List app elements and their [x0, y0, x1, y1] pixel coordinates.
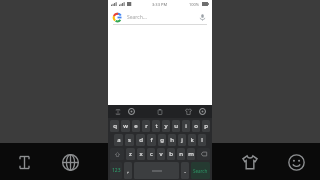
- button[interactable]: Clipboard: [154, 106, 165, 117]
- button[interactable]: d: [136, 134, 145, 146]
- button[interactable]: e: [132, 120, 140, 132]
- button[interactable]: m: [187, 148, 195, 160]
- button[interactable]: q: [110, 120, 119, 132]
- staticText: e: [134, 122, 138, 130]
- staticText: Search: [193, 168, 208, 174]
- staticText: v: [159, 150, 163, 158]
- button[interactable]: j: [178, 134, 186, 146]
- staticText: r: [145, 122, 148, 130]
- staticText: j: [181, 136, 183, 144]
- button[interactable]: Space: [134, 162, 179, 179]
- button[interactable]: b: [167, 148, 175, 160]
- staticText: s: [128, 136, 131, 144]
- staticText: ,: [127, 167, 129, 175]
- staticText: 3:33 PM: [152, 2, 168, 7]
- button[interactable]: a: [114, 134, 123, 146]
- staticText: q: [113, 122, 117, 130]
- button[interactable]: w: [121, 120, 130, 132]
- staticText: z: [129, 150, 132, 158]
- staticText: f: [150, 136, 153, 144]
- button[interactable]: r: [142, 120, 150, 132]
- button[interactable]: More: [197, 106, 208, 117]
- button[interactable]: s: [125, 134, 134, 146]
- staticText: a: [117, 136, 121, 144]
- staticText: .: [184, 167, 186, 175]
- staticText: g: [160, 136, 164, 144]
- staticText: 100%: [189, 2, 200, 7]
- button[interactable]: Globe: [54, 146, 86, 178]
- staticText: k: [190, 136, 194, 144]
- button[interactable]: ,: [124, 162, 132, 179]
- button[interactable]: Search...: [108, 8, 212, 25]
- staticText: p: [204, 122, 208, 130]
- button[interactable]: z: [126, 148, 135, 160]
- button[interactable]: 123: [110, 162, 122, 179]
- button[interactable]: Search: [191, 162, 210, 179]
- staticText: t: [155, 122, 158, 130]
- staticText: l: [201, 136, 203, 144]
- staticText: Search...: [127, 14, 147, 21]
- staticText: h: [170, 136, 174, 144]
- staticText: b: [169, 150, 173, 158]
- button[interactable]: i: [182, 120, 190, 132]
- staticText: o: [194, 122, 198, 130]
- staticText: m: [188, 150, 194, 158]
- button[interactable]: c: [147, 148, 155, 160]
- staticText: 123: [112, 167, 121, 174]
- button[interactable]: t: [152, 120, 160, 132]
- button[interactable]: k: [188, 134, 196, 146]
- staticText: c: [150, 150, 153, 158]
- button[interactable]: Themes: [183, 106, 194, 117]
- button[interactable]: Shift: [110, 148, 124, 160]
- staticText: d: [139, 136, 143, 144]
- button[interactable]: h: [168, 134, 176, 146]
- button[interactable]: o: [192, 120, 200, 132]
- button[interactable]: y: [162, 120, 170, 132]
- button[interactable]: Shirt: [234, 146, 266, 178]
- button[interactable]: l: [198, 134, 206, 146]
- button[interactable]: p: [202, 120, 210, 132]
- button[interactable]: Text tool: [8, 146, 40, 178]
- button[interactable]: Backspace: [197, 148, 210, 160]
- staticText: i: [185, 122, 187, 130]
- button[interactable]: n: [177, 148, 185, 160]
- button[interactable]: Emoji: [280, 146, 312, 178]
- button[interactable]: v: [157, 148, 165, 160]
- button[interactable]: f: [147, 134, 156, 146]
- button[interactable]: g: [158, 134, 166, 146]
- staticText: n: [179, 150, 183, 158]
- staticText: y: [164, 122, 168, 130]
- button[interactable]: u: [172, 120, 180, 132]
- button[interactable]: x: [137, 148, 145, 160]
- button[interactable]: Settings: [126, 106, 137, 117]
- button[interactable]: Cursor control: [112, 106, 123, 117]
- button[interactable]: Voice search: [197, 12, 207, 22]
- button[interactable]: .: [181, 162, 189, 179]
- staticText: x: [139, 150, 143, 158]
- staticText: u: [174, 122, 178, 130]
- staticText: w: [123, 122, 128, 130]
